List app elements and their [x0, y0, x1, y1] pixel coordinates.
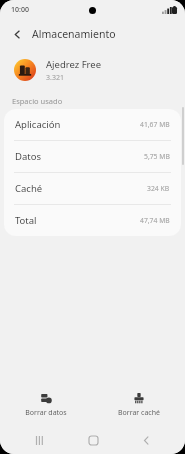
staticText: Borrar datos: [25, 408, 67, 418]
button[interactable]: Home: [78, 426, 108, 454]
staticText: 3.321: [46, 73, 64, 83]
button[interactable]: Aplicación: [4, 109, 181, 140]
staticText: Almacenamiento: [32, 27, 116, 41]
button[interactable]: Ajedrez Free: [0, 47, 185, 93]
button[interactable]: Caché: [4, 173, 181, 204]
staticText: Datos: [15, 150, 41, 163]
button[interactable]: Total: [4, 205, 181, 236]
staticText: 10:00: [11, 5, 29, 15]
staticText: 5,75 MB: [144, 152, 170, 161]
staticText: Total: [15, 214, 37, 227]
staticText: Aplicación: [15, 118, 61, 131]
staticText: 47,74 MB: [140, 216, 170, 225]
staticText: 41,67 MB: [140, 120, 170, 129]
button[interactable]: Back: [6, 23, 28, 45]
button[interactable]: Back: [131, 426, 161, 454]
staticText: Espacio usado: [12, 96, 63, 106]
staticText: 324 KB: [147, 184, 170, 193]
staticText: Borrar caché: [118, 408, 160, 418]
staticText: Caché: [15, 182, 43, 195]
button[interactable]: Recent apps: [24, 426, 54, 454]
button[interactable]: Borrar caché: [92, 384, 185, 426]
staticText: Ajedrez Free: [46, 58, 102, 71]
button[interactable]: Datos: [4, 141, 181, 172]
button[interactable]: Borrar datos: [0, 384, 92, 426]
